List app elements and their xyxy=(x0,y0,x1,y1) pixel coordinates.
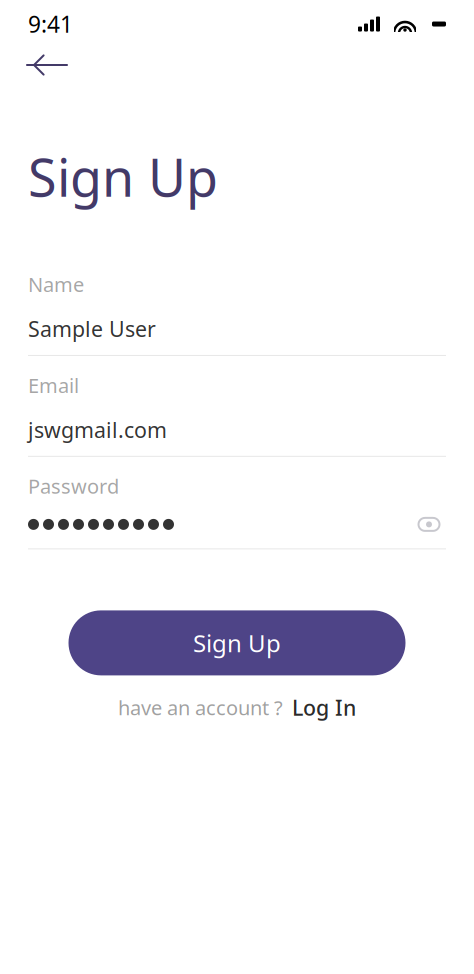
staticText: jswgmail.com xyxy=(28,415,167,444)
button[interactable]: Back xyxy=(26,46,84,84)
staticText: Name xyxy=(28,271,84,298)
staticText: Sample User xyxy=(28,315,156,343)
staticText: Password xyxy=(28,473,119,499)
button[interactable]: Log In xyxy=(283,689,356,726)
staticText: Log In xyxy=(292,693,356,722)
button[interactable]: Show password xyxy=(412,511,446,537)
staticText: Sign Up xyxy=(193,627,281,659)
staticText: have an account ? xyxy=(118,694,283,721)
button[interactable]: Sign Up xyxy=(68,610,405,675)
staticText: 9:41 xyxy=(28,9,73,39)
staticText: Sign Up xyxy=(28,142,218,211)
staticText: Email xyxy=(28,372,79,398)
